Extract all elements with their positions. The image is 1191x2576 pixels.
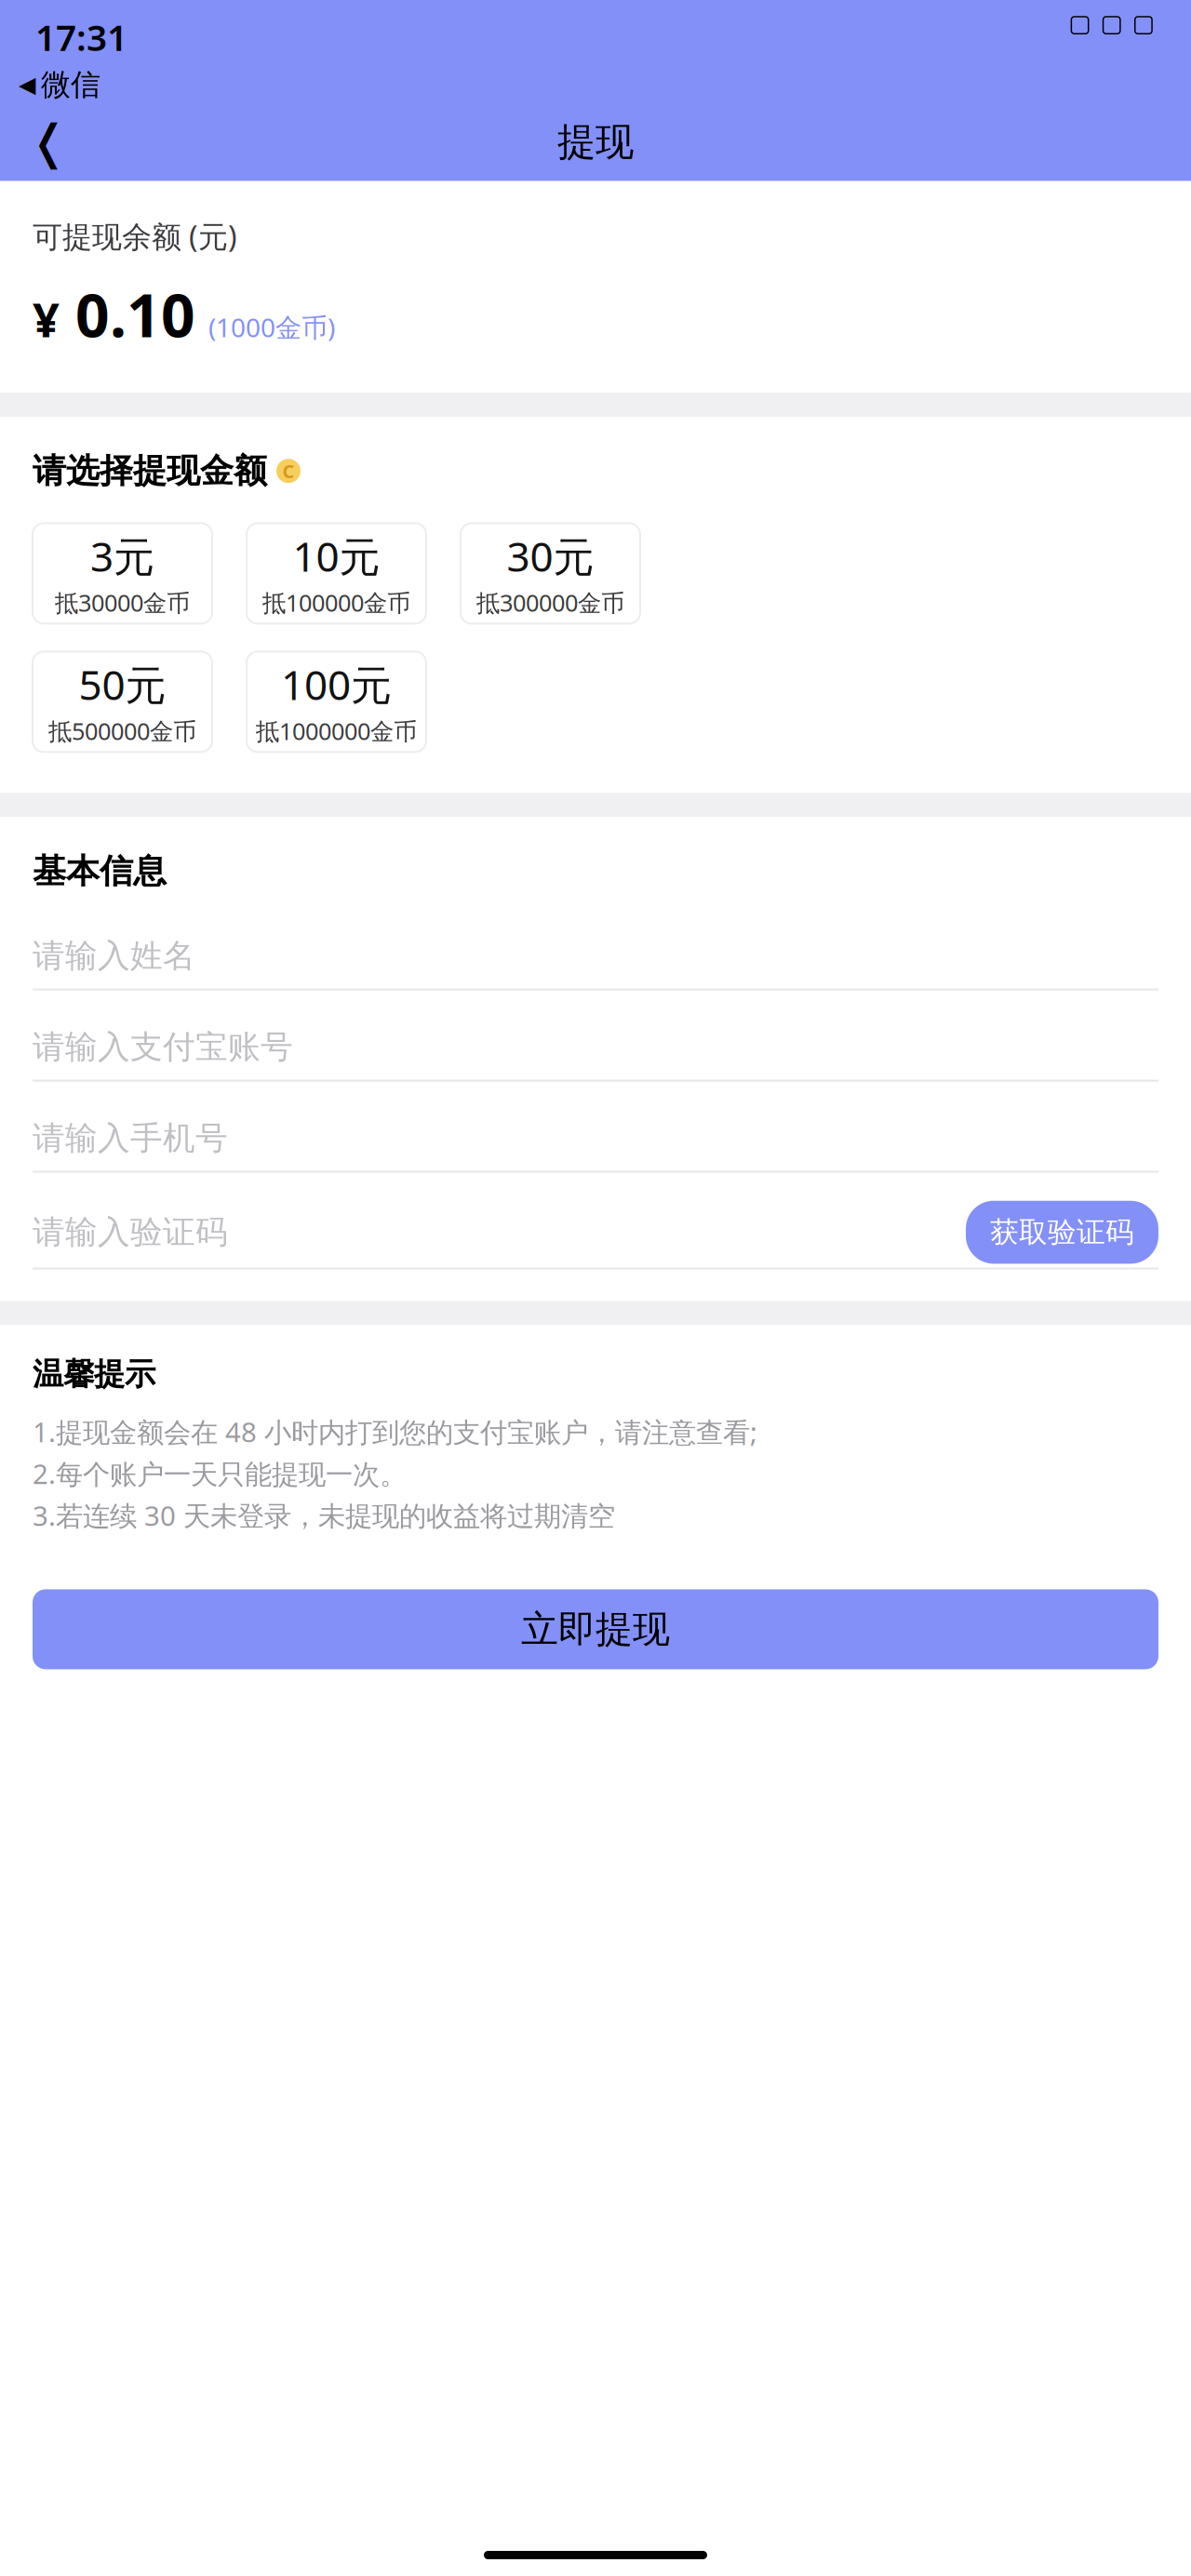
staticText: 3元	[90, 529, 154, 583]
staticText: 100元	[281, 657, 392, 711]
staticText: 获取验证码	[990, 1215, 1134, 1250]
button[interactable]: 100元	[247, 652, 426, 752]
button[interactable]: 30元	[461, 523, 640, 624]
staticText: 请选择提现金额	[33, 450, 267, 491]
staticText: 抵100000金币	[262, 587, 410, 618]
staticText: 请输入姓名	[33, 936, 195, 976]
staticText: C	[282, 459, 294, 483]
staticText: 可提现余额 (元)	[33, 216, 237, 256]
staticText: 请输入验证码	[33, 1212, 228, 1252]
staticText: 抵300000金币	[476, 587, 624, 618]
staticText: 抵1000000金币	[256, 715, 417, 746]
staticText: 提现	[557, 118, 634, 166]
staticText: 微信	[41, 66, 100, 103]
staticText: 3.若连续 30 天未登录，未提现的收益将过期清空	[33, 1497, 615, 1534]
staticText: 50元	[79, 657, 166, 711]
button[interactable]: 获取验证码	[966, 1201, 1158, 1264]
staticText: 0.10	[60, 275, 195, 354]
button[interactable]: 50元	[33, 652, 212, 752]
staticText: 2.每个账户一天只能提现一次。	[33, 1455, 407, 1492]
button[interactable]: ◀	[19, 66, 100, 103]
button[interactable]: 立即提现	[33, 1589, 1158, 1669]
button[interactable]: 10元	[247, 523, 426, 624]
button[interactable]: 返回	[20, 114, 76, 170]
button[interactable]: 3元	[33, 523, 212, 624]
staticText: ❬	[29, 115, 68, 169]
staticText: 1.提现金额会在 48 小时内打到您的支付宝账户，请注意查看;	[33, 1414, 757, 1450]
staticText: 请输入手机号	[33, 1118, 228, 1158]
staticText: 30元	[507, 529, 594, 583]
staticText: 请输入支付宝账号	[33, 1027, 293, 1067]
staticText: 基本信息	[33, 851, 167, 892]
staticText: 温馨提示	[33, 1355, 155, 1393]
staticText: 17:31	[35, 13, 127, 61]
staticText: 抵500000金币	[48, 715, 196, 746]
staticText: (1000金币)	[195, 310, 335, 344]
staticText: ¥	[33, 288, 60, 350]
staticText: ◀	[19, 72, 35, 97]
staticText: 10元	[293, 529, 380, 583]
staticText: 立即提现	[521, 1606, 670, 1652]
staticText: 抵30000金币	[55, 587, 190, 618]
